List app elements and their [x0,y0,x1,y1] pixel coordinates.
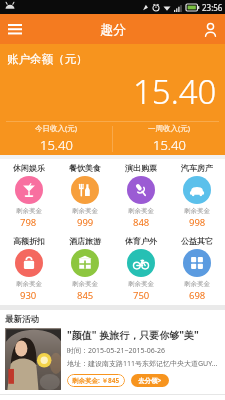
staticText: 剩余奖金 [128,280,154,288]
button[interactable]: 高额折扣 [0,232,57,305]
button[interactable]: 休闲娱乐 [0,159,57,232]
staticText: 15.40 [133,69,217,114]
staticText: 去分领> [138,376,162,385]
button[interactable]: 酒店旅游 [57,232,113,305]
button[interactable]: Menu [0,14,30,44]
button[interactable]: Profile [195,14,225,44]
staticText: 时间：2015-05-21~2015-06-26 [67,346,166,356]
button[interactable]: 餐饮美食 [57,159,113,232]
staticText: 酒店旅游 [69,236,101,246]
staticText: 848 [133,216,150,229]
staticText: 750 [133,289,150,302]
button[interactable]: 体育户外 [113,232,169,305]
staticText: 15.40 [40,136,73,154]
staticText: 998 [189,216,206,229]
button[interactable]: 去分领> [131,374,169,387]
staticText: 15.40 [153,136,186,154]
staticText: 798 [20,216,37,229]
button[interactable]: "颜值" 换旅行，只要你够"美" [0,328,225,390]
staticText: 账户余额（元） [7,52,88,66]
staticText: 汽车房产 [181,163,213,173]
button[interactable]: 汽车房产 [169,159,225,232]
button[interactable]: 剩余奖金: ￥845 [67,374,125,387]
staticText: 今日收入(元) [35,123,77,133]
staticText: 剩余奖金: ￥845 [72,376,120,385]
button[interactable]: 演出购票 [113,159,169,232]
staticText: 剩余奖金 [184,280,210,288]
staticText: 698 [189,289,206,302]
staticText: 23:56 [202,2,223,13]
button[interactable]: 公益其它 [169,232,225,305]
staticText: 一周收入(元) [148,123,190,133]
button[interactable]: 今日收入(元) [0,122,112,155]
staticText: 休闲娱乐 [13,163,45,173]
staticText: 地址：建设南支路111号东郊记忆中央大道GUY… [67,359,218,369]
staticText: 体育户外 [125,236,157,246]
staticText: 999 [77,216,94,229]
staticText: 剩余奖金 [16,207,42,215]
staticText: 剩余奖金 [184,207,210,215]
staticText: 演出购票 [125,163,157,173]
staticText: 最新活动 [5,314,39,325]
button[interactable]: 一周收入(元) [113,122,225,155]
staticText: 公益其它 [181,236,213,246]
staticText: 餐饮美食 [69,163,101,173]
staticText: 930 [20,289,37,302]
staticText: 剩余奖金 [72,280,98,288]
staticText: 剩余奖金 [16,280,42,288]
staticText: 845 [77,289,94,302]
staticText: 趣分 [100,21,126,37]
staticText: 剩余奖金 [72,207,98,215]
staticText: 剩余奖金 [128,207,154,215]
staticText: "颜值" 换旅行，只要你够"美" [67,328,199,342]
staticText: 高额折扣 [13,236,45,246]
